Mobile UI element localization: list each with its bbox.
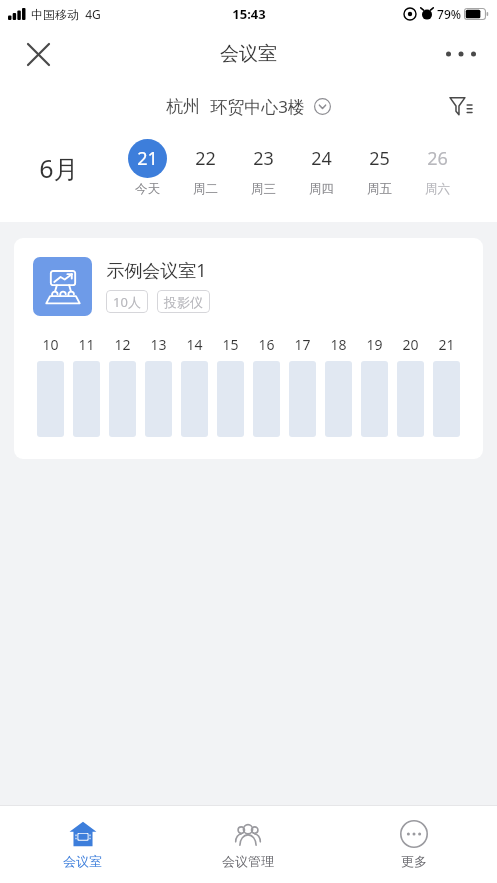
button[interactable]: 投影仪 <box>157 290 210 313</box>
staticText: 周四 <box>309 181 334 197</box>
button[interactable]: 21 <box>118 139 176 197</box>
staticText: 投影仪 <box>164 294 203 310</box>
staticText: 15 <box>222 335 239 354</box>
staticText: 周五 <box>367 181 392 197</box>
staticText: 24 <box>311 146 332 171</box>
staticText: 23 <box>253 146 274 171</box>
button[interactable]: 25 <box>350 139 408 197</box>
staticText: 会议室 <box>63 853 102 869</box>
staticText: 周六 <box>425 181 450 197</box>
button[interactable]: 10人 <box>106 290 148 313</box>
staticText: 16 <box>258 335 275 354</box>
button[interactable]: More options <box>437 30 485 78</box>
staticText: 13 <box>150 335 167 354</box>
staticText: 10 <box>42 335 59 354</box>
staticText: 26 <box>427 146 448 171</box>
staticText: 今天 <box>135 181 160 197</box>
staticText: 杭州 <box>166 96 200 117</box>
staticText: 更多 <box>401 853 427 869</box>
button[interactable]: 会议室 <box>0 812 165 877</box>
staticText: 25 <box>369 146 390 171</box>
button[interactable]: 23 <box>234 139 292 197</box>
staticText: 10人 <box>113 293 141 311</box>
button[interactable]: 会议管理 <box>165 812 331 877</box>
button[interactable]: 杭州 <box>160 91 337 122</box>
staticText: 15:43 <box>232 5 266 23</box>
staticText: 环贸中心3楼 <box>210 95 305 118</box>
staticText: 示例会议室1 <box>106 258 207 283</box>
staticText: 11 <box>78 335 95 354</box>
staticText: 18 <box>330 335 347 354</box>
staticText: 21 <box>438 335 455 354</box>
button[interactable]: Close <box>14 30 62 78</box>
staticText: 21 <box>137 146 158 171</box>
staticText: 会议管理 <box>222 853 274 869</box>
staticText: 周二 <box>193 181 218 197</box>
button[interactable]: 示例会议室1 <box>14 238 483 459</box>
staticText: 会议室 <box>220 42 277 66</box>
staticText: 20 <box>402 335 419 354</box>
button[interactable]: 22 <box>176 139 234 197</box>
staticText: 6月 <box>39 151 79 185</box>
button[interactable]: 更多 <box>331 812 497 877</box>
staticText: 12 <box>114 335 131 354</box>
staticText: 周三 <box>251 181 276 197</box>
staticText: 中国移动 <box>31 7 79 22</box>
staticText: 19 <box>366 335 383 354</box>
button[interactable]: 24 <box>292 139 350 197</box>
staticText: 4G <box>85 6 101 22</box>
staticText: 79% <box>437 6 461 22</box>
staticText: 14 <box>186 335 203 354</box>
staticText: 22 <box>195 146 216 171</box>
button[interactable]: 26 <box>408 139 466 197</box>
staticText: 17 <box>294 335 311 354</box>
button[interactable]: Filter <box>439 84 483 128</box>
